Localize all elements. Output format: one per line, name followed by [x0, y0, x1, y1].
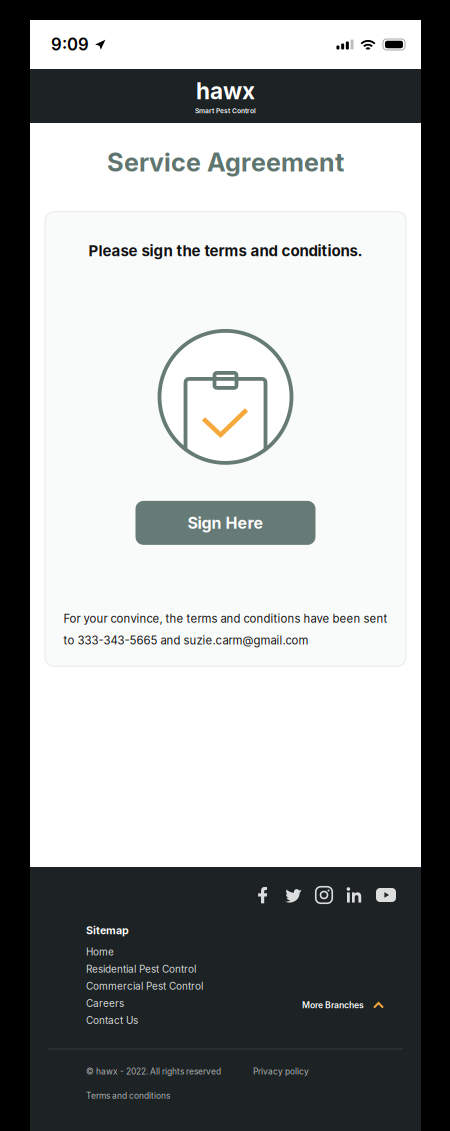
staticText: Careers [86, 997, 124, 1009]
button[interactable]: Contact Us [86, 1014, 138, 1026]
button[interactable]: Terms and conditions [86, 1091, 170, 1101]
button[interactable]: Facebook [255, 886, 271, 904]
button[interactable]: Twitter [284, 886, 302, 904]
button[interactable]: Careers [86, 997, 124, 1009]
staticText: Sign Here [187, 513, 263, 533]
button[interactable]: More Branches [302, 1000, 384, 1010]
button[interactable]: Residential Pest Control [86, 963, 196, 975]
staticText: For your convince, the terms and conditi… [63, 612, 387, 647]
staticText: Terms and conditions [86, 1091, 170, 1101]
staticText: Sitemap [86, 924, 129, 937]
staticText: More Branches [302, 1000, 364, 1010]
staticText: Commercial Pest Control [86, 980, 203, 992]
button[interactable]: Privacy policy [253, 1066, 309, 1077]
staticText: Home [86, 946, 114, 958]
staticText: Please sign the terms and conditions. [88, 242, 362, 260]
staticText: Smart Pest Control [195, 107, 256, 115]
staticText: © hawx - 2022. All rights reserved [86, 1066, 221, 1077]
staticText: 9:09 [51, 34, 89, 55]
staticText: Residential Pest Control [86, 963, 196, 975]
staticText: Privacy policy [253, 1066, 309, 1077]
button[interactable]: LinkedIn [346, 886, 363, 904]
button[interactable]: YouTube [376, 886, 396, 904]
button[interactable]: Sign Here [135, 501, 315, 545]
staticText: hawx [196, 77, 255, 105]
button[interactable]: Home [86, 946, 114, 958]
button[interactable]: Commercial Pest Control [86, 980, 203, 992]
staticText: Contact Us [86, 1014, 138, 1026]
staticText: Service Agreement [107, 147, 344, 178]
button[interactable]: Instagram [315, 886, 333, 904]
